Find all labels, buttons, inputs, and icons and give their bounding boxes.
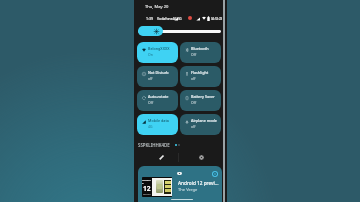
staticText: Android 12 previ… <box>178 180 219 186</box>
staticText: off <box>191 76 196 81</box>
staticText: VodafoneAU <box>157 16 178 21</box>
button[interactable]: Battery Saver <box>180 90 221 111</box>
staticText: 12 <box>143 184 151 193</box>
button[interactable]: Airplane mode <box>180 114 221 135</box>
staticText: Off <box>191 52 196 57</box>
staticText: Off <box>191 100 196 105</box>
button[interactable]: Not Disturb <box>137 66 178 87</box>
button[interactable]: Brightness <box>138 26 221 36</box>
staticText: Airplane mode <box>191 118 217 123</box>
staticText: Auto-rotate <box>148 94 169 99</box>
staticText: Thu, May 20 <box>145 4 169 10</box>
staticText: Off <box>148 100 153 105</box>
staticText: PREVIEW <box>143 193 151 195</box>
button[interactable]: Expand notification <box>212 171 218 177</box>
staticText: 1:39 <box>146 16 153 21</box>
button[interactable]: Settings <box>184 151 218 164</box>
staticText: Mobile data <box>148 118 169 123</box>
staticText: The Verge <box>178 187 198 193</box>
staticText: SSPKLIHHK4DE <box>138 142 170 148</box>
button[interactable]: Edit tiles <box>144 151 178 164</box>
staticText: 4G <box>148 124 153 129</box>
staticText: off <box>191 124 196 129</box>
staticText: 04:53:23 <box>211 17 223 21</box>
staticText: off <box>148 76 153 81</box>
staticText: ANDROID <box>142 179 152 185</box>
button[interactable]: BelongXXXX <box>137 42 178 63</box>
button[interactable]: Auto-rotate <box>137 90 178 111</box>
staticText: 5G <box>178 17 182 21</box>
button[interactable]: Flashlight <box>180 66 221 87</box>
staticText: Not Disturb <box>148 70 169 75</box>
staticText: On <box>148 52 153 57</box>
staticText: BelongXXXX <box>148 46 170 51</box>
staticText: Bluetooth <box>191 46 209 51</box>
button[interactable]: Expand notification <box>138 166 222 202</box>
staticText: Battery Saver <box>191 94 215 99</box>
button[interactable]: Mobile data <box>137 114 178 135</box>
staticText: Flashlight <box>191 70 209 75</box>
button[interactable]: Bluetooth <box>180 42 221 63</box>
